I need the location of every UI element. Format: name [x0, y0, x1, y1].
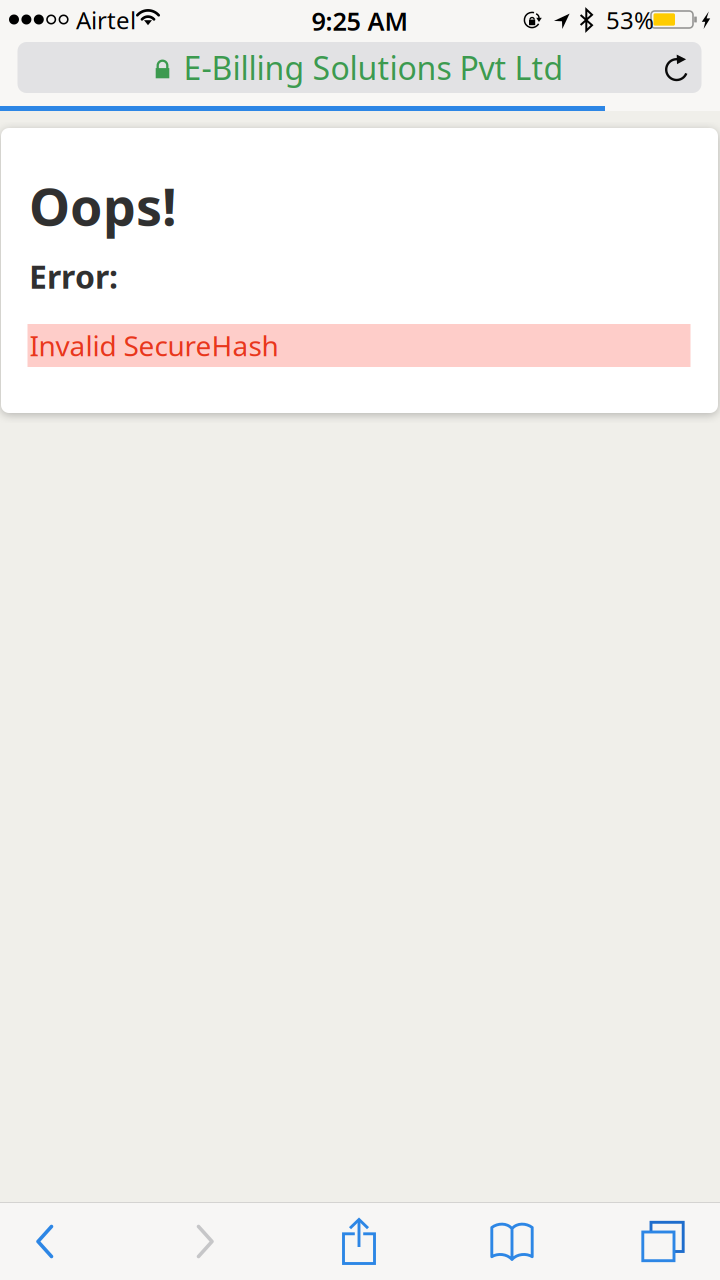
staticText: 9:25 AM	[311, 4, 408, 38]
staticText: Invalid SecureHash	[29, 327, 278, 364]
button[interactable]: Reload page	[653, 42, 701, 93]
staticText: Oops!	[29, 171, 177, 240]
staticText: E-Billing Solutions Pvt Ltd	[183, 46, 563, 89]
button[interactable]: Tabs	[618, 1203, 708, 1280]
button[interactable]: Back	[0, 1203, 90, 1280]
staticText: Error:	[29, 255, 118, 297]
button[interactable]: Share	[314, 1203, 404, 1280]
button[interactable]: Bookmarks	[467, 1203, 557, 1280]
button[interactable]: Forward	[160, 1203, 250, 1280]
staticText: Airtel	[76, 4, 136, 36]
staticText: 53%	[606, 4, 654, 36]
